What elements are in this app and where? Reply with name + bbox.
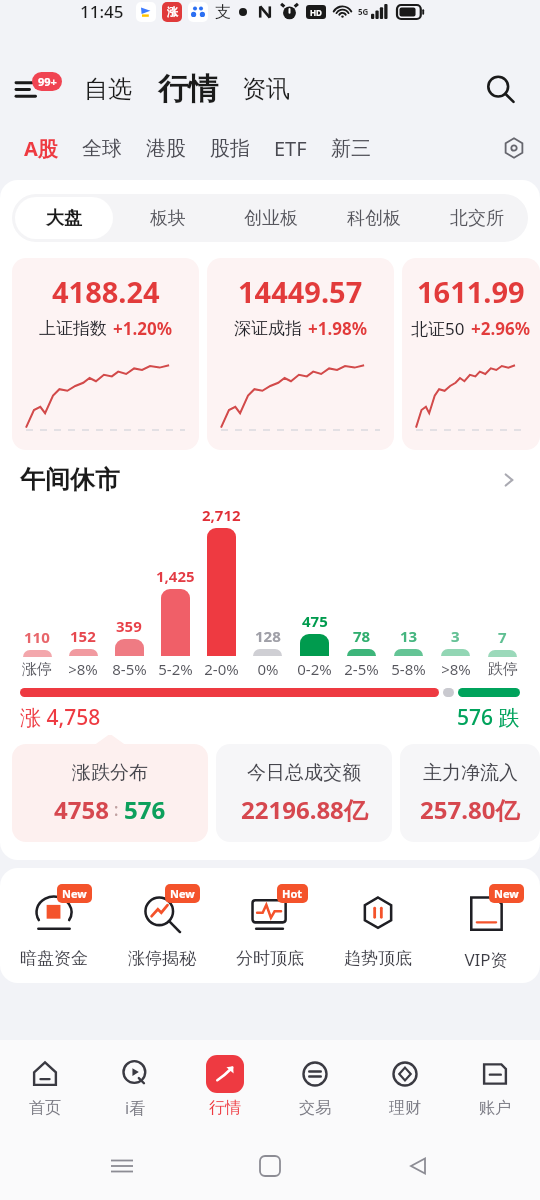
staticText: New [170,886,195,901]
staticText: 板块 [150,207,186,230]
button[interactable]: Tab settings [496,130,532,166]
button[interactable]: 港股 [140,130,192,167]
button[interactable]: 自选 [80,68,136,110]
staticText: 北交所 [450,207,504,230]
button[interactable]: 交易 [270,1040,360,1132]
button[interactable]: Hot [216,886,324,969]
staticText: 股指 [210,136,250,161]
staticText: 跌停 [488,660,518,679]
staticText: 资讯 [242,74,290,104]
staticText: HD [310,7,322,18]
staticText: 2,712 [202,505,241,525]
staticText: 3 [451,626,460,646]
staticText: 北证50 [411,317,465,340]
button[interactable]: ETF [268,129,313,168]
staticText: 2-5% [344,659,379,679]
staticText: 78 [353,626,371,646]
button[interactable]: Recents [96,1140,148,1192]
staticText: 7 [498,627,507,647]
staticText: 主力净流入 [423,761,518,785]
staticText: 创业板 [244,207,298,230]
staticText: 576 跌 [457,703,520,732]
staticText: 257.80亿 [420,793,520,826]
staticText: 涨跌分布 [72,761,148,785]
button[interactable]: 理财 [360,1040,450,1132]
button[interactable]: Menu [16,67,60,111]
button[interactable]: 首页 [0,1040,90,1132]
staticText: 8-5% [112,659,147,679]
button[interactable]: Search [478,67,522,111]
staticText: 99+ [38,74,57,89]
button[interactable]: 1611.99 [402,258,540,450]
staticText: 涨 4,758 [20,703,101,732]
staticText: 13 [400,626,418,646]
staticText: 新三 [331,136,371,161]
staticText: 涨 [167,5,178,19]
staticText: New [62,886,87,901]
staticText: 475 [302,611,328,631]
button[interactable]: A股 [18,129,64,168]
staticText: +1.20% [113,317,173,340]
staticText: 4758 [54,793,109,826]
button[interactable]: 行情 [154,66,222,112]
button[interactable]: New [432,886,540,971]
staticText: A股 [24,135,58,162]
staticText: 5G [358,6,369,17]
button[interactable]: 趋势顶底 [324,886,432,969]
button[interactable]: New [0,886,108,969]
staticText: 0-2% [297,659,332,679]
button[interactable]: 股指 [204,130,256,167]
button[interactable]: 新三 [325,130,377,167]
staticText: 行情 [209,1098,241,1118]
staticText: 首页 [29,1098,61,1118]
staticText: 152 [70,626,96,646]
staticText: 128 [255,626,281,646]
staticText: 110 [24,627,50,647]
button[interactable]: Home [244,1140,296,1192]
button[interactable]: 板块 [119,197,216,239]
button[interactable]: 主力净流入 [400,744,540,842]
button[interactable]: New [108,886,216,969]
button[interactable]: 今日总成交额 [216,744,392,842]
staticText: 5-8% [391,659,426,679]
button[interactable]: 北交所 [428,197,525,239]
staticText: 4188.24 [52,272,160,311]
staticText: 大盘 [46,207,82,230]
staticText: ETF [274,135,307,162]
button[interactable]: 14449.57 [207,258,394,450]
button[interactable]: 创业板 [222,197,319,239]
staticText: : [109,797,124,822]
staticText: 支 [215,2,231,22]
button[interactable]: 全球 [76,130,128,167]
button[interactable]: 4188.24 [12,258,199,450]
staticText: 1611.99 [417,272,525,311]
staticText: 科创板 [347,207,401,230]
staticText: 自选 [84,74,132,104]
staticText: >8% [68,659,98,679]
staticText: 上证指数 [39,318,107,339]
button[interactable]: 午间休市 [20,464,520,495]
staticText: 交易 [299,1098,331,1118]
button[interactable]: 资讯 [238,68,294,110]
button[interactable]: 账户 [450,1040,540,1132]
staticText: 理财 [389,1098,421,1118]
staticText: 359 [116,616,142,636]
button[interactable]: 行情 [180,1040,270,1132]
button[interactable]: i看 [90,1040,180,1132]
staticText: 涨停揭秘 [128,948,196,969]
staticText: 0% [257,659,279,679]
staticText: 576 [124,793,166,826]
staticText: 11:45 [80,0,124,23]
button[interactable]: Back [392,1140,444,1192]
button[interactable]: 科创板 [325,197,422,239]
staticText: 14449.57 [238,272,363,311]
button[interactable]: 大盘 [15,197,113,239]
staticText: +1.98% [308,317,368,340]
staticText: 全球 [82,136,122,161]
staticText: 行情 [158,70,218,108]
staticText: 涨停 [22,660,52,679]
button[interactable]: 涨跌分布 [12,744,208,842]
staticText: Hot [282,886,303,901]
staticText: 港股 [146,136,186,161]
staticText: +2.96% [471,317,531,340]
